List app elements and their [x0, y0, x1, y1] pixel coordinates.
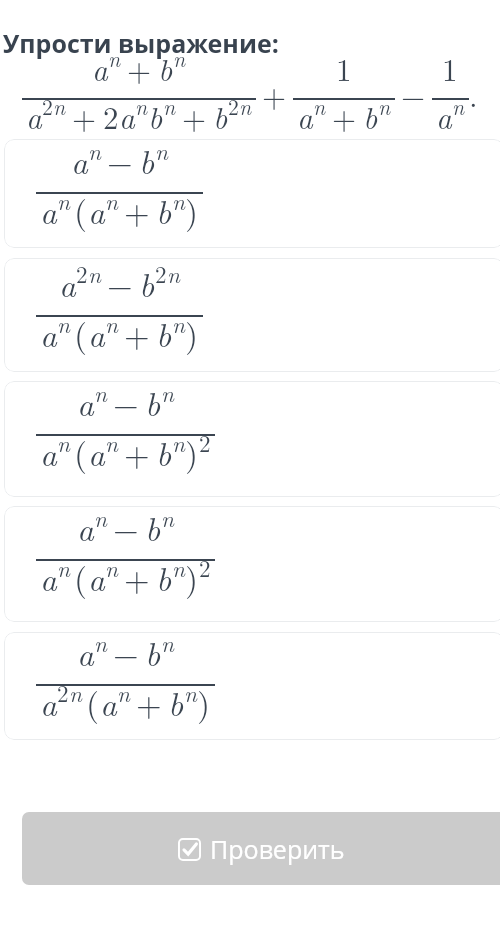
staticText: 2	[155, 258, 167, 290]
staticText: +	[124, 187, 150, 234]
staticText: a	[40, 310, 57, 357]
staticText: .	[469, 72, 478, 116]
staticText: n	[57, 551, 70, 584]
button[interactable]: a	[4, 381, 500, 497]
staticText: n	[173, 43, 186, 74]
staticText: (	[86, 678, 100, 726]
staticText: 2	[57, 676, 69, 709]
staticText: a	[77, 506, 94, 551]
staticText: n	[184, 676, 197, 709]
staticText: b	[363, 94, 378, 138]
staticText: −	[401, 72, 426, 116]
staticText: n	[172, 307, 185, 340]
staticText: +	[332, 94, 357, 138]
staticText: 2	[42, 91, 53, 122]
staticText: n	[88, 139, 101, 167]
staticText: 1	[336, 46, 352, 90]
staticText: n	[452, 91, 465, 122]
staticText: +	[127, 46, 152, 90]
staticText: b	[158, 46, 173, 90]
staticText: b	[213, 94, 228, 138]
staticText: n	[108, 43, 121, 74]
staticText: +	[182, 94, 207, 138]
staticText: a	[100, 679, 117, 726]
staticText: a	[88, 187, 105, 234]
staticText: a	[88, 310, 105, 357]
staticText: a	[40, 554, 57, 601]
staticText: a	[88, 554, 105, 601]
staticText: n	[94, 506, 107, 534]
staticText: b	[145, 506, 161, 551]
staticText: a	[40, 429, 57, 476]
staticText: n	[167, 258, 180, 290]
staticText: a	[297, 94, 313, 138]
staticText: n	[57, 307, 70, 340]
staticText: (	[74, 428, 88, 476]
staticText: a	[71, 139, 88, 184]
staticText: a	[77, 381, 94, 426]
button[interactable]: Проверить	[22, 812, 500, 885]
staticText: +	[124, 554, 150, 601]
staticText: n	[172, 551, 185, 584]
staticText: (	[74, 186, 88, 234]
staticText: n	[155, 139, 168, 167]
staticText: n	[105, 426, 118, 459]
staticText: a	[77, 632, 94, 676]
staticText: a	[119, 94, 135, 138]
staticText: −	[107, 139, 133, 184]
staticText: +	[124, 429, 150, 476]
staticText: n	[105, 307, 118, 340]
staticText: n	[135, 91, 148, 122]
staticText: a	[92, 46, 108, 90]
staticText: +	[72, 94, 97, 138]
staticText: b	[145, 381, 161, 426]
staticText: a	[40, 187, 57, 234]
staticText: b	[168, 679, 184, 726]
staticText: a	[40, 679, 57, 726]
staticText: n	[313, 91, 326, 122]
staticText: n	[94, 381, 107, 409]
staticText: −	[113, 632, 139, 676]
staticText: n	[105, 551, 118, 584]
staticText: 2	[199, 551, 211, 584]
button[interactable]: a	[4, 506, 500, 622]
staticText: b	[139, 260, 155, 307]
staticText: n	[161, 381, 174, 409]
staticText: n	[88, 258, 101, 290]
staticText: +	[136, 679, 162, 726]
staticText: Упрости выражение:	[3, 26, 279, 60]
staticText: n	[53, 91, 66, 122]
staticText: n	[105, 184, 118, 217]
staticText: 2	[103, 94, 119, 138]
staticText: a	[59, 260, 76, 307]
button[interactable]: a	[4, 139, 500, 248]
staticText: 2	[228, 91, 239, 122]
staticText: n	[94, 632, 107, 659]
staticText: b	[156, 554, 172, 601]
staticText: a	[26, 94, 42, 138]
staticText: Проверить	[210, 832, 345, 866]
staticText: n	[172, 426, 185, 459]
button[interactable]: a	[4, 632, 500, 740]
button[interactable]: a	[4, 258, 500, 372]
staticText: 1	[442, 46, 458, 90]
staticText: )	[185, 309, 199, 357]
staticText: b	[145, 632, 161, 676]
staticText: −	[113, 381, 139, 426]
staticText: b	[156, 310, 172, 357]
staticText: b	[156, 187, 172, 234]
staticText: n	[117, 676, 130, 709]
staticText: a	[436, 94, 452, 138]
staticText: +	[124, 310, 150, 357]
staticText: −	[107, 260, 133, 307]
staticText: b	[139, 139, 155, 184]
staticText: n	[239, 91, 252, 122]
staticText: −	[113, 506, 139, 551]
staticText: 2	[199, 426, 211, 459]
staticText: n	[57, 184, 70, 217]
staticText: b	[156, 429, 172, 476]
staticText: )	[185, 186, 199, 234]
staticText: (	[74, 309, 88, 357]
staticText: b	[148, 94, 163, 138]
staticText: n	[378, 91, 391, 122]
